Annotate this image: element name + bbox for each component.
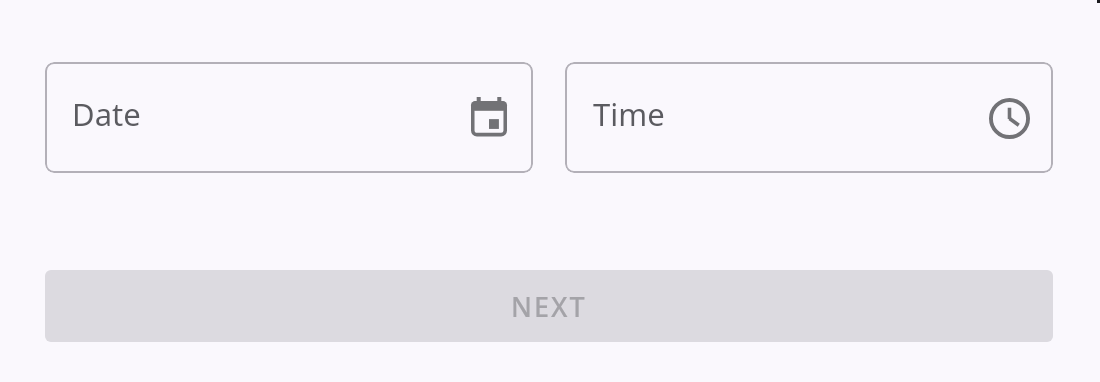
staticText: NEXT: [511, 288, 587, 325]
staticText: Time: [593, 93, 665, 135]
staticText: Date: [72, 93, 141, 135]
button[interactable]: Date: [45, 62, 533, 173]
button[interactable]: NEXT: [45, 270, 1053, 342]
button[interactable]: Time: [565, 62, 1053, 173]
other: Select date: [471, 97, 507, 137]
other: Select time: [989, 98, 1030, 139]
